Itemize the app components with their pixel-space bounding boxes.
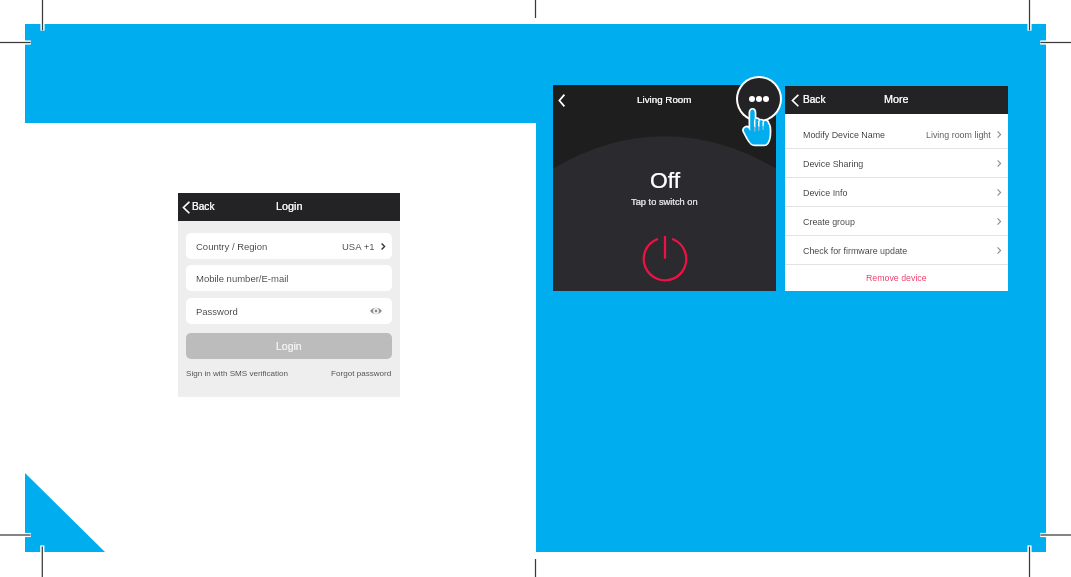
button[interactable]: Forgot password <box>331 369 392 378</box>
staticText: Back <box>803 94 826 105</box>
button[interactable]: Back <box>553 85 570 116</box>
staticText: Login <box>276 200 303 212</box>
staticText: Login <box>276 340 302 352</box>
button[interactable]: Mobile number/E-mail <box>186 265 392 291</box>
staticText: Living room light <box>926 130 991 140</box>
button[interactable]: Sign in with SMS verification <box>186 369 289 378</box>
button[interactable]: Device Sharing <box>785 149 1008 178</box>
staticText: Living Room <box>637 94 692 105</box>
staticText: Back <box>192 201 215 212</box>
button[interactable]: Show password <box>370 307 382 315</box>
button[interactable]: Remove device <box>785 265 1008 291</box>
button[interactable]: Check for firmware update <box>785 236 1008 265</box>
button[interactable]: Power toggle <box>642 236 688 282</box>
staticText: Create group <box>803 217 855 227</box>
button[interactable]: Back <box>785 86 841 114</box>
button[interactable]: Country / Region <box>186 233 392 259</box>
button[interactable]: Device Info <box>785 178 1008 207</box>
staticText: Country / Region <box>196 241 268 252</box>
staticText: Device Info <box>803 188 848 198</box>
staticText: Check for firmware update <box>803 246 908 256</box>
staticText: Device Sharing <box>803 159 864 169</box>
button[interactable]: Password <box>186 298 392 324</box>
button[interactable]: Modify Device Name <box>785 120 1008 149</box>
staticText: USA +1 <box>342 241 375 252</box>
button[interactable]: More options <box>738 78 780 120</box>
button[interactable]: Back <box>178 193 234 221</box>
staticText: More <box>884 93 909 105</box>
staticText: Tap to switch on <box>631 197 698 207</box>
staticText: Modify Device Name <box>803 130 886 140</box>
button[interactable]: Create group <box>785 207 1008 236</box>
staticText: Mobile number/E-mail <box>196 273 289 284</box>
button[interactable]: Login <box>186 333 392 359</box>
staticText: Remove device <box>866 273 927 283</box>
staticText: Password <box>196 306 238 317</box>
staticText: Off <box>650 167 680 192</box>
